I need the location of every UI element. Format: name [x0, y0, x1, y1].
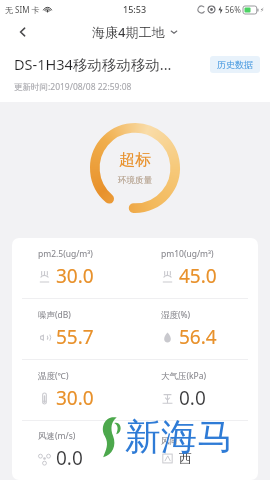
staticText: 环境质量	[118, 175, 152, 186]
staticText: ⚡	[260, 6, 265, 13]
button[interactable]: pm2.5(ug/m³)	[12, 238, 135, 298]
staticText: 湿度(%)	[161, 309, 191, 321]
staticText: 15:53	[123, 3, 147, 15]
staticText: 历史数据	[217, 59, 253, 70]
staticText: 新海马	[125, 414, 233, 459]
staticText: 30.0	[56, 263, 94, 289]
staticText: 55.7	[56, 324, 94, 350]
staticText: DS-1H34移动移动移动...	[14, 54, 172, 74]
button[interactable]: 大气压(kPa)	[135, 360, 258, 420]
button[interactable]: 历史数据	[210, 56, 260, 73]
staticText: 风速(m/s)	[38, 430, 76, 442]
staticText: 更新时间:2019/08/08 22:59:08	[14, 81, 132, 93]
staticText: 0.0	[56, 445, 83, 471]
button[interactable]: 噪声(dB)	[12, 299, 135, 359]
staticText: 温度(℃)	[38, 370, 69, 382]
staticText: pm2.5(ug/m³)	[38, 248, 93, 260]
staticText: 45.0	[179, 263, 217, 289]
staticText: 风向	[161, 436, 178, 447]
staticText: 56.4	[179, 324, 217, 350]
staticText: 0.0	[179, 385, 206, 411]
button[interactable]: pm10(ug/m³)	[135, 238, 258, 298]
staticText: 噪声(dB)	[38, 309, 71, 321]
button[interactable]: 湿度(%)	[135, 299, 258, 359]
button[interactable]: 风速(m/s)	[12, 421, 135, 480]
staticText: 30.0	[56, 385, 94, 411]
staticText: 无 SIM 卡	[5, 4, 40, 15]
staticText: 超标	[119, 150, 151, 170]
staticText: 56%	[225, 4, 241, 15]
staticText: 海康4期工地	[92, 23, 165, 41]
button[interactable]: 海康4期工地	[92, 23, 178, 41]
staticText: pm10(ug/m³)	[161, 248, 214, 260]
button[interactable]: 温度(℃)	[12, 360, 135, 420]
button[interactable]: 风向	[135, 421, 258, 480]
staticText: 西	[179, 450, 192, 466]
button[interactable]: Back	[8, 18, 38, 45]
staticText: 大气压(kPa)	[161, 370, 207, 382]
